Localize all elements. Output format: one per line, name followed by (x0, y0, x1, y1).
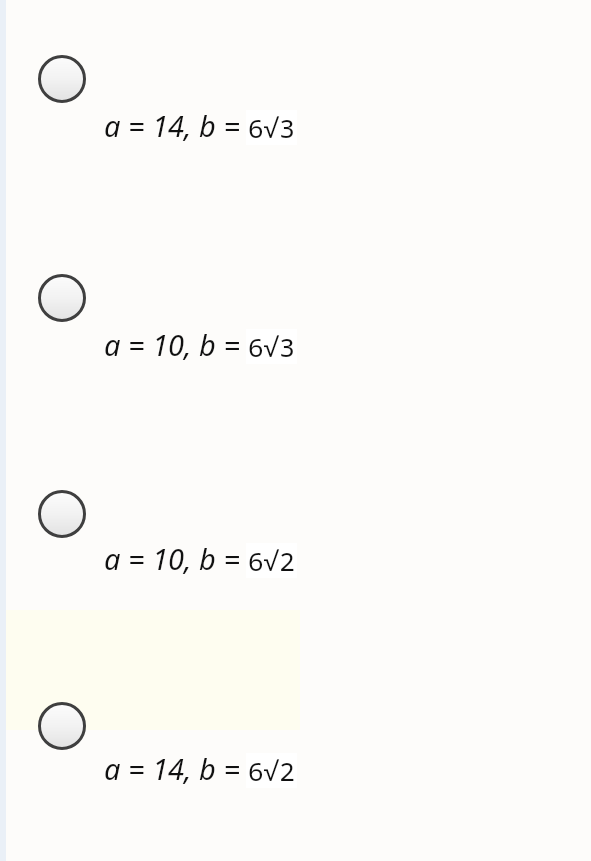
staticText: 6√3 (248, 110, 295, 145)
button[interactable]: Select a = 10, b = 6√2 (0, 437, 591, 649)
other: Select a = 14, b = 6√2 (38, 702, 86, 750)
other: Select a = 10, b = 6√3 (38, 274, 86, 322)
staticText: a = 14, b = (104, 749, 240, 788)
other: Select a = 10, b = 6√2 (38, 490, 86, 538)
button[interactable]: Select a = 14, b = 6√2 (0, 649, 591, 861)
staticText: a = 10, b = (104, 325, 240, 364)
button[interactable]: Select a = 14, b = 6√3 (0, 0, 591, 219)
staticText: 6√2 (248, 753, 295, 788)
button[interactable]: Select a = 10, b = 6√3 (0, 219, 591, 437)
staticText: 6√3 (248, 329, 295, 364)
staticText: a = 10, b = (104, 539, 240, 578)
other: Select a = 14, b = 6√3 (38, 55, 86, 103)
staticText: a = 14, b = (104, 106, 240, 145)
staticText: 6√2 (248, 543, 295, 578)
